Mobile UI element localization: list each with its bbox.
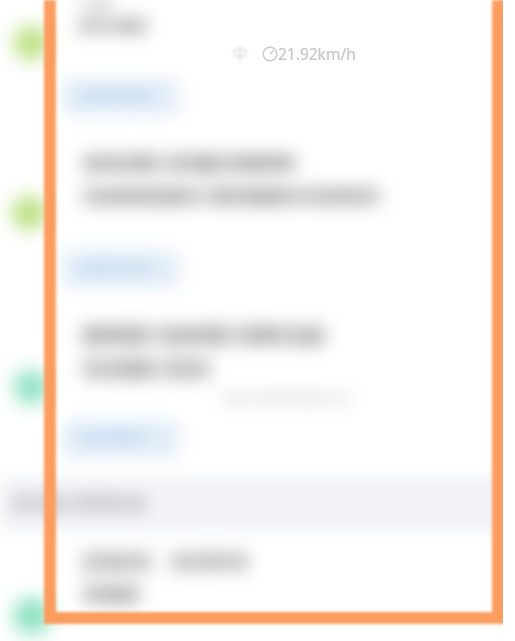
- button[interactable]: List item 4: [0, 535, 515, 613]
- button[interactable]: List item 2: [0, 130, 515, 300]
- button[interactable]: Average speed: [262, 43, 356, 64]
- button[interactable]: List item 1: [0, 0, 515, 130]
- staticText: 21.92km/h: [278, 43, 356, 64]
- other: Average speed: [262, 46, 278, 62]
- button[interactable]: List item 3: [0, 300, 515, 472]
